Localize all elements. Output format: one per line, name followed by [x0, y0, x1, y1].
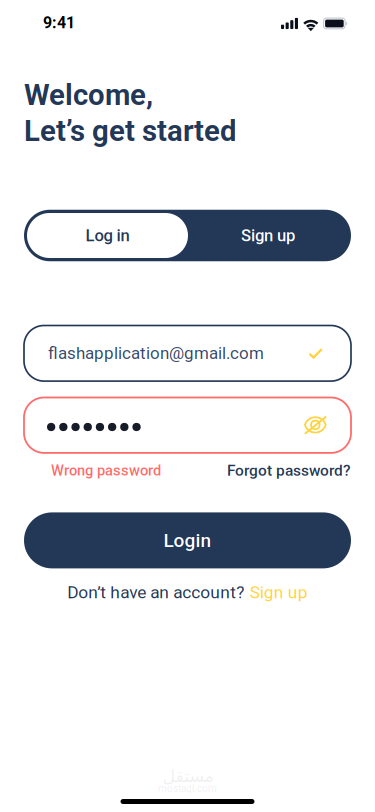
staticText: Forgot password? — [227, 461, 351, 479]
staticText: Let’s get started — [24, 114, 237, 148]
staticText: Don’t have an account? — [67, 582, 244, 602]
staticText: Welcome, — [24, 78, 153, 112]
staticText: Login — [163, 529, 211, 551]
staticText: Sign up — [241, 226, 295, 245]
staticText: مستقل — [162, 766, 213, 786]
staticText: Log in — [85, 226, 129, 245]
button[interactable]: Forgot password? — [227, 461, 351, 479]
button[interactable]: Log in — [27, 213, 188, 258]
button[interactable]: Show password — [304, 416, 327, 435]
staticText: mostaql.com — [158, 783, 217, 794]
staticText: 9:41 — [43, 13, 75, 32]
staticText: Sign up — [250, 582, 308, 602]
staticText: flashapplication@gmail.com — [48, 343, 264, 363]
button[interactable]: Sign up — [188, 213, 348, 258]
staticText: Wrong password — [51, 462, 161, 479]
button[interactable]: Login — [24, 512, 351, 568]
button[interactable]: Sign up — [250, 582, 308, 602]
